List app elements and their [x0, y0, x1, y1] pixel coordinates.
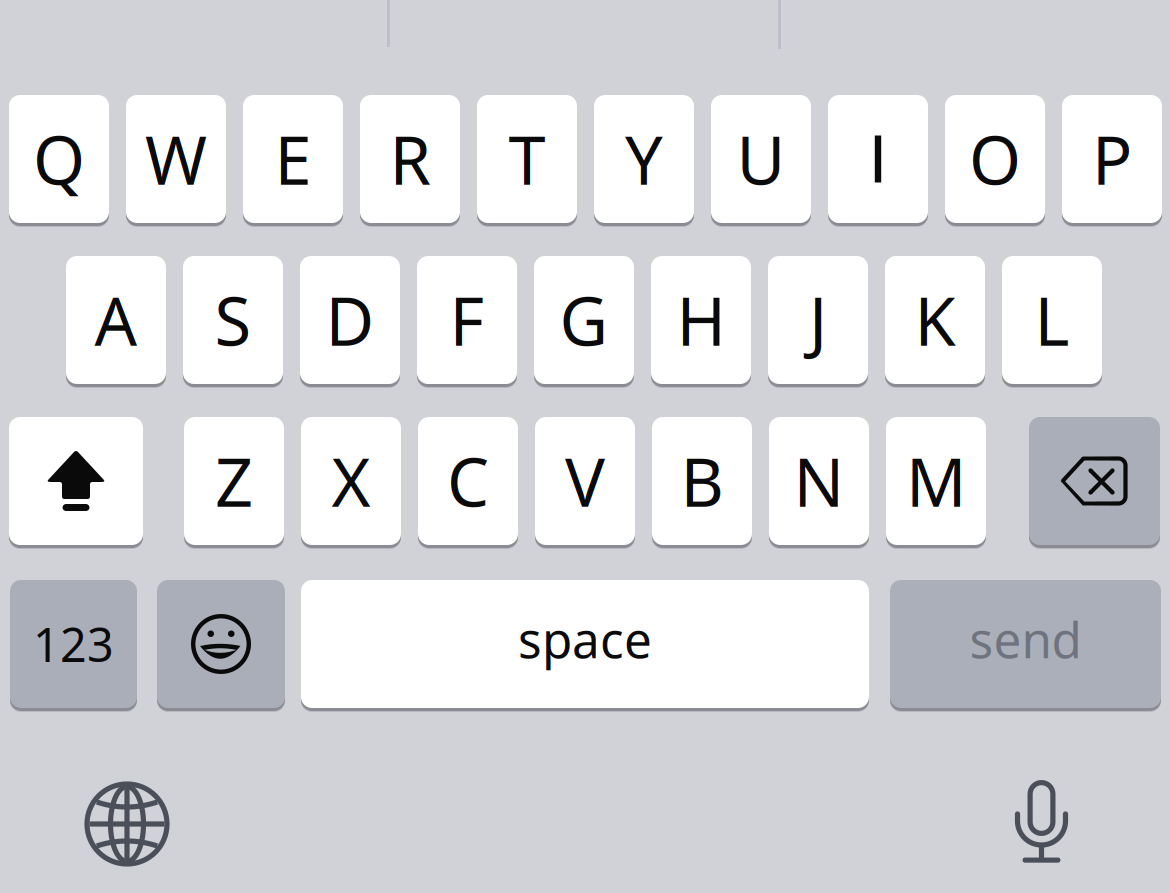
button[interactable]: R: [360, 95, 460, 227]
staticText: P: [1092, 115, 1132, 203]
staticText: C: [447, 437, 489, 525]
button[interactable]: P: [1062, 95, 1162, 227]
staticText: T: [508, 115, 545, 203]
button[interactable]: X: [301, 417, 401, 549]
button[interactable]: [828, 95, 928, 227]
button[interactable]: C: [418, 417, 518, 549]
staticText: O: [969, 115, 1021, 203]
staticText: L: [1034, 276, 1069, 364]
button[interactable]: B: [652, 417, 752, 549]
staticText: X: [331, 437, 370, 525]
button[interactable]: Z: [184, 417, 284, 549]
button[interactable]: K: [885, 256, 985, 388]
button[interactable]: 123: [10, 580, 137, 712]
button[interactable]: M: [886, 417, 986, 549]
staticText: Q: [33, 115, 85, 203]
button[interactable]: E: [243, 95, 343, 227]
button[interactable]: G: [534, 256, 634, 388]
button[interactable]: U: [711, 95, 811, 227]
staticText: R: [389, 115, 430, 203]
staticText: Y: [625, 115, 663, 203]
staticText: K: [914, 276, 955, 364]
staticText: D: [325, 276, 374, 364]
button[interactable]: A: [66, 256, 166, 388]
button[interactable]: space: [301, 580, 869, 712]
staticText: N: [793, 437, 844, 525]
button[interactable]: F: [417, 256, 517, 388]
button[interactable]: Delete: [1029, 417, 1160, 549]
staticText: M: [906, 437, 966, 525]
staticText: space: [518, 606, 652, 672]
staticText: G: [559, 276, 608, 364]
button[interactable]: S: [183, 256, 283, 388]
button[interactable]: W: [126, 95, 226, 227]
button[interactable]: Dictation: [1014, 780, 1070, 864]
button[interactable]: Shift: [9, 417, 143, 549]
staticText: S: [214, 276, 251, 364]
staticText: send: [969, 606, 1081, 672]
staticText: 123: [33, 613, 114, 675]
staticText: V: [565, 437, 605, 525]
staticText: A: [94, 276, 137, 364]
staticText: J: [809, 276, 827, 364]
button[interactable]: T: [477, 95, 577, 227]
button[interactable]: Y: [594, 95, 694, 227]
button[interactable]: Next keyboard: [87, 784, 167, 864]
button[interactable]: send: [890, 580, 1161, 712]
button[interactable]: V: [535, 417, 635, 549]
staticText: E: [274, 115, 311, 203]
button[interactable]: H: [651, 256, 751, 388]
staticText: B: [680, 437, 723, 525]
button[interactable]: L: [1002, 256, 1102, 388]
staticText: H: [676, 276, 725, 364]
staticText: F: [449, 276, 484, 364]
staticText: U: [736, 115, 785, 203]
button[interactable]: J: [768, 256, 868, 388]
button[interactable]: Q: [9, 95, 109, 227]
button[interactable]: O: [945, 95, 1045, 227]
button[interactable]: Emoji: [157, 580, 285, 712]
button[interactable]: N: [769, 417, 869, 549]
button[interactable]: D: [300, 256, 400, 388]
staticText: W: [145, 115, 207, 203]
staticText: Z: [215, 437, 253, 525]
